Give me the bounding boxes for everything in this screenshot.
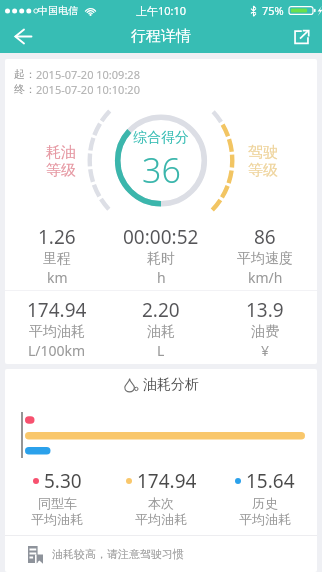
staticText: 驾驶 等级 (248, 143, 278, 179)
button[interactable]: Back (0, 20, 46, 53)
button[interactable]: Share (280, 20, 322, 53)
staticText: 起： (14, 67, 36, 81)
staticText: 平均油耗 (29, 323, 85, 341)
staticText: 15.64 (246, 468, 295, 494)
staticText: 平均油耗 (31, 511, 83, 527)
staticText: km/h (248, 268, 283, 287)
staticText: 1.26 (38, 224, 76, 250)
staticText: 历史 (252, 495, 278, 511)
staticText: 174.94 (137, 468, 197, 494)
staticText: 同型车 (38, 495, 77, 511)
staticText: 油耗分析 (143, 376, 199, 394)
staticText: 5.30 (44, 468, 82, 494)
staticText: 油耗较高，请注意驾驶习惯 (52, 547, 184, 561)
staticText: 00:00:52 (123, 224, 199, 250)
staticText: ¥ (261, 341, 270, 360)
staticText: 平均油耗 (239, 511, 291, 527)
staticText: 油费 (251, 323, 279, 341)
staticText: 本次 (148, 495, 174, 511)
staticText: 36 (142, 147, 181, 193)
staticText: 终： (14, 82, 36, 96)
staticText: 13.9 (246, 297, 284, 323)
staticText: 油耗 (147, 323, 175, 341)
staticText: 平均油耗 (135, 511, 187, 527)
staticText: 174.94 (27, 297, 87, 323)
staticText: L/100km (28, 341, 86, 360)
staticText: 2015-07-20 10:09:28 (36, 67, 140, 82)
staticText: 综合得分 (133, 129, 189, 147)
staticText: 行程详情 (131, 27, 191, 46)
staticText: 上午10:10 (136, 3, 187, 18)
staticText: 2.20 (142, 297, 180, 323)
staticText: 75% (262, 3, 284, 18)
staticText: h (157, 268, 166, 287)
staticText: 耗时 (147, 250, 175, 268)
staticText: 平均速度 (237, 250, 293, 268)
staticText: 2015-07-20 10:10:20 (36, 82, 140, 97)
staticText: L (157, 341, 165, 360)
staticText: 中国电信 (38, 4, 78, 17)
staticText: 耗油 等级 (46, 143, 76, 179)
staticText: 86 (254, 224, 276, 250)
staticText: km (47, 268, 68, 287)
staticText: 里程 (43, 250, 71, 268)
